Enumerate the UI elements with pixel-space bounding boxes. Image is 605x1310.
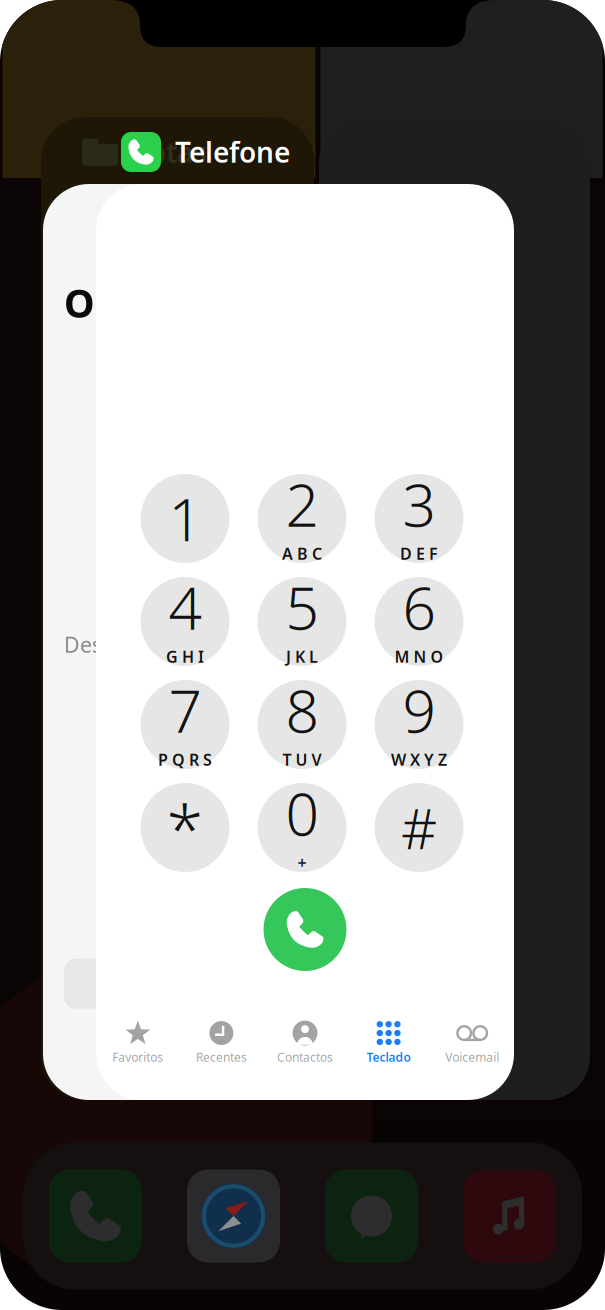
staticText: 2 [285,465,318,543]
staticText: P Q R S [158,749,212,770]
staticText: D E F [400,543,438,564]
staticText: Relógio [477,659,546,686]
button[interactable]: 7 [140,680,229,769]
button[interactable]: 6 [374,577,463,666]
staticText: 6 [402,568,435,646]
button[interactable]: 5 [257,577,346,666]
staticText: Ontem [64,277,198,328]
staticText: + [297,852,306,873]
staticText: 3 [402,465,435,543]
staticText: T U V [282,749,321,770]
staticText: 1 [168,479,201,557]
button[interactable]: 2 [257,474,346,563]
button[interactable]: 1 [140,474,229,563]
staticText: Mapas [481,801,543,827]
button[interactable]: 3 [374,474,463,563]
staticText: Descarregado [64,630,204,659]
button[interactable]: Call [263,888,346,971]
button[interactable]: Contactos [263,1020,347,1065]
staticText: 7 [168,671,201,749]
staticText: A B C [282,543,322,564]
staticText: J K L [286,646,318,667]
staticText: 4 [168,568,201,646]
staticText: G H I [166,646,204,667]
staticText: Recentes [196,1049,247,1065]
button[interactable]: Recentes [180,1020,263,1065]
staticText: W X Y Z [391,749,447,770]
staticText: # [401,790,437,865]
button[interactable]: # [374,783,463,872]
button[interactable]: 4 [140,577,229,666]
staticText: 8 [285,671,318,749]
button[interactable]: 0 [257,783,346,872]
staticText: Voicemail [445,1049,499,1065]
staticText: Favoritos [112,1049,163,1065]
button[interactable]: Voicemail [430,1020,514,1065]
staticText: Notas [127,133,207,171]
button[interactable]: 8 [257,680,346,769]
staticText: Telefone [175,133,290,171]
button[interactable]: * [140,783,229,872]
staticText: M N O [394,646,443,667]
staticText: Contactos [277,1049,333,1065]
staticText: 0 [285,774,318,852]
button[interactable]: Teclado [347,1020,430,1065]
staticText: * [166,783,203,872]
button[interactable]: 9 [374,680,463,769]
staticText: 9 [402,671,435,749]
button[interactable]: Favoritos [96,1020,180,1065]
staticText: Notas [484,518,539,544]
staticText: 5 [285,568,318,646]
staticText: Teclado [367,1049,411,1065]
